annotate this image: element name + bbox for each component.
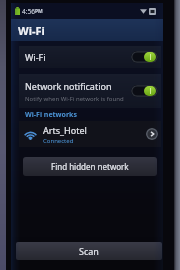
staticText: Connected — [43, 137, 74, 145]
staticText: Network notification — [25, 80, 112, 92]
button[interactable]: Toggle — [131, 51, 158, 63]
button[interactable]: Wi-Fi — [11, 19, 163, 41]
button[interactable]: Network details — [146, 128, 158, 140]
button[interactable]: Toggle — [131, 85, 158, 97]
button[interactable]: Wi-Fi — [19, 46, 161, 68]
staticText: Wi-Fi — [18, 23, 45, 38]
button[interactable]: Network notification — [19, 74, 161, 108]
staticText: Arts_Hotel — [43, 124, 87, 136]
staticText: PM — [35, 8, 43, 15]
staticText: Wi-Fi networks — [25, 110, 77, 120]
staticText: Find hidden network — [51, 161, 129, 172]
staticText: 4:56 — [22, 7, 35, 16]
button[interactable]: Arts_Hotel — [19, 121, 161, 147]
button[interactable]: Scan — [16, 242, 162, 260]
staticText: Scan — [79, 245, 99, 257]
staticText: Notify when Wi-Fi network is found — [25, 95, 124, 103]
staticText: Wi-Fi — [25, 51, 46, 63]
button[interactable]: Find hidden network — [23, 157, 157, 176]
